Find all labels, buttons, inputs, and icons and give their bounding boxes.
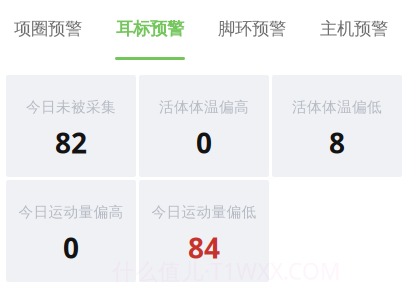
staticText: 今日运动量偏高 (18, 203, 123, 221)
staticText: 今日运动量偏低 (151, 203, 256, 221)
button[interactable]: 主机预警 (306, 0, 408, 61)
button[interactable]: 耳标预警 (102, 0, 204, 61)
button[interactable]: 活体体温偏低 (272, 75, 402, 177)
staticText: 主机预警 (320, 18, 388, 39)
button[interactable]: 今日运动量偏高 (6, 180, 136, 282)
staticText: 8 (329, 124, 345, 161)
staticText: 0 (196, 124, 212, 161)
staticText: 活体体温偏低 (292, 98, 382, 116)
button[interactable]: 今日未被采集 (6, 75, 136, 177)
staticText: 什么值儿·T1WXX.COM (112, 256, 341, 286)
staticText: 活体体温偏高 (159, 98, 249, 116)
staticText: 耳标预警 (116, 18, 184, 39)
button[interactable]: 活体体温偏高 (139, 75, 269, 177)
staticText: 今日未被采集 (26, 98, 116, 116)
staticText: 84 (188, 229, 220, 266)
button[interactable]: 项圈预警 (0, 0, 102, 61)
button[interactable]: 脚环预警 (204, 0, 306, 61)
button[interactable]: 今日运动量偏低 (139, 180, 269, 282)
staticText: 0 (63, 229, 79, 266)
staticText: 脚环预警 (218, 18, 286, 39)
staticText: 82 (55, 124, 87, 161)
staticText: 项圈预警 (14, 18, 82, 39)
